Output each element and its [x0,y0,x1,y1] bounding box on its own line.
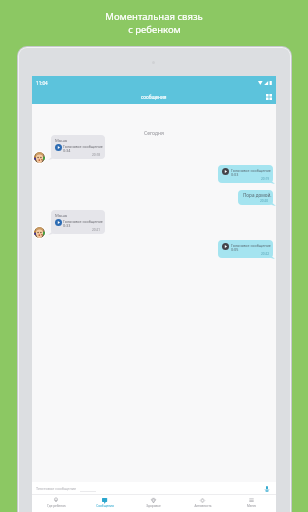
staticText: с ребенком [128,23,181,36]
staticText: 20:18 [92,153,101,157]
staticText: 0:34 [63,148,71,153]
staticText: Голосовое сообщение [231,243,271,248]
button[interactable]: Сообщения [80,494,129,512]
staticText: Текстовое сообщение [36,486,77,491]
staticText: Маша [55,138,68,144]
staticText: 20:19 [261,177,270,181]
staticText: Моментальная связь [105,10,203,23]
button[interactable]: Где ребенок [32,494,80,512]
staticText: Маша [55,213,68,219]
staticText: Пора домой. [243,192,272,198]
staticText: 11:04 [36,80,48,86]
button[interactable]: Аватар Маша [34,152,45,163]
button[interactable]: Голосовое сообщение [218,165,273,183]
button[interactable]: Пора домой. [238,190,273,205]
staticText: 0:03 [231,172,239,177]
staticText: Где ребенок [47,504,66,508]
staticText: Голосовое сообщение [231,168,271,173]
button[interactable]: Голосовое сообщение [218,240,273,258]
button[interactable]: Маша [51,135,105,159]
staticText: сообщения [141,94,167,100]
staticText: 0:33 [63,223,71,228]
staticText: 20:21 [92,228,101,232]
staticText: Активность [194,504,212,508]
staticText: 20:22 [261,252,270,256]
button[interactable]: Маша [51,210,105,234]
staticText: 0:05 [231,247,239,252]
button[interactable]: Аватар Маша [34,227,45,238]
button[interactable]: Записать голосовое сообщение [262,484,272,494]
staticText: Голосовое сообщение [63,219,103,224]
button[interactable]: Меню [227,494,276,512]
button[interactable]: Здоровье [129,494,178,512]
staticText: Здоровье [146,504,161,508]
button[interactable]: Активность [178,494,227,512]
staticText: Голосовое сообщение [63,144,103,149]
staticText: Меню [247,504,256,508]
button[interactable]: Приложения [262,90,276,104]
staticText: 20:20 [260,199,269,203]
staticText: Сегодня [32,130,276,137]
staticText: Сообщения [96,504,114,508]
